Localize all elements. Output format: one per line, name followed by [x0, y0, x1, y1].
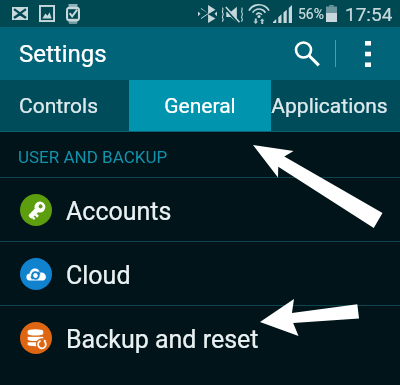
- button[interactable]: Cloud: [0, 242, 400, 305]
- button[interactable]: Backup and reset: [0, 306, 400, 369]
- button[interactable]: Accounts: [0, 178, 400, 241]
- button[interactable]: Controls: [0, 80, 129, 132]
- button[interactable]: Search: [278, 27, 334, 80]
- staticText: Cloud: [66, 261, 131, 290]
- staticText: Accounts: [66, 197, 172, 226]
- staticText: USER AND BACKUP: [18, 147, 168, 167]
- staticText: General: [164, 94, 236, 119]
- staticText: Settings: [19, 40, 107, 68]
- staticText: 56%: [298, 6, 324, 22]
- staticText: Applications: [271, 94, 387, 119]
- staticText: Backup and reset: [66, 325, 259, 354]
- button[interactable]: More options: [336, 27, 400, 80]
- button[interactable]: Applications: [271, 80, 387, 132]
- button[interactable]: General: [129, 80, 271, 132]
- staticText: 17:54: [345, 3, 393, 25]
- staticText: Controls: [19, 94, 98, 119]
